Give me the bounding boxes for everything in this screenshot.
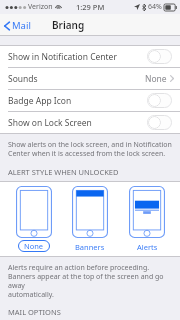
staticText: None xyxy=(145,73,167,85)
button[interactable]: Alerts xyxy=(124,186,170,254)
button[interactable]: Toggle off xyxy=(147,115,172,130)
staticText: Show on Lock Screen xyxy=(8,117,92,129)
staticText: Show in Notification Center xyxy=(8,51,117,63)
staticText: Alerts require an action before proceedi… xyxy=(8,263,172,299)
staticText: Verizon xyxy=(28,2,53,12)
staticText: Mail xyxy=(12,19,31,32)
button[interactable]: Toggle off xyxy=(147,93,172,108)
button[interactable]: Mail xyxy=(0,16,37,35)
staticText: Show alerts on the lock screen, and in N… xyxy=(8,140,172,158)
button[interactable]: Sounds xyxy=(0,68,180,89)
button[interactable]: Toggle off xyxy=(147,49,172,64)
button[interactable]: Banners xyxy=(67,186,113,254)
button[interactable]: Show on Lock Screen xyxy=(0,112,180,133)
staticText: Badge App Icon xyxy=(8,95,72,107)
staticText: Briang xyxy=(52,18,85,32)
staticText: Alerts xyxy=(137,242,158,252)
staticText: None xyxy=(24,241,44,251)
button[interactable]: Show in Notification Center xyxy=(0,46,180,67)
staticText: 64% xyxy=(148,2,162,12)
button[interactable]: None xyxy=(11,186,57,252)
staticText: Banners xyxy=(75,242,105,252)
staticText: ALERT STYLE WHEN UNLOCKED xyxy=(8,167,119,177)
staticText: 1:29 PM xyxy=(76,2,105,12)
staticText: MAIL OPTIONS xyxy=(8,307,61,316)
staticText: Sounds xyxy=(8,73,38,85)
button[interactable]: Badge App Icon xyxy=(0,90,180,111)
